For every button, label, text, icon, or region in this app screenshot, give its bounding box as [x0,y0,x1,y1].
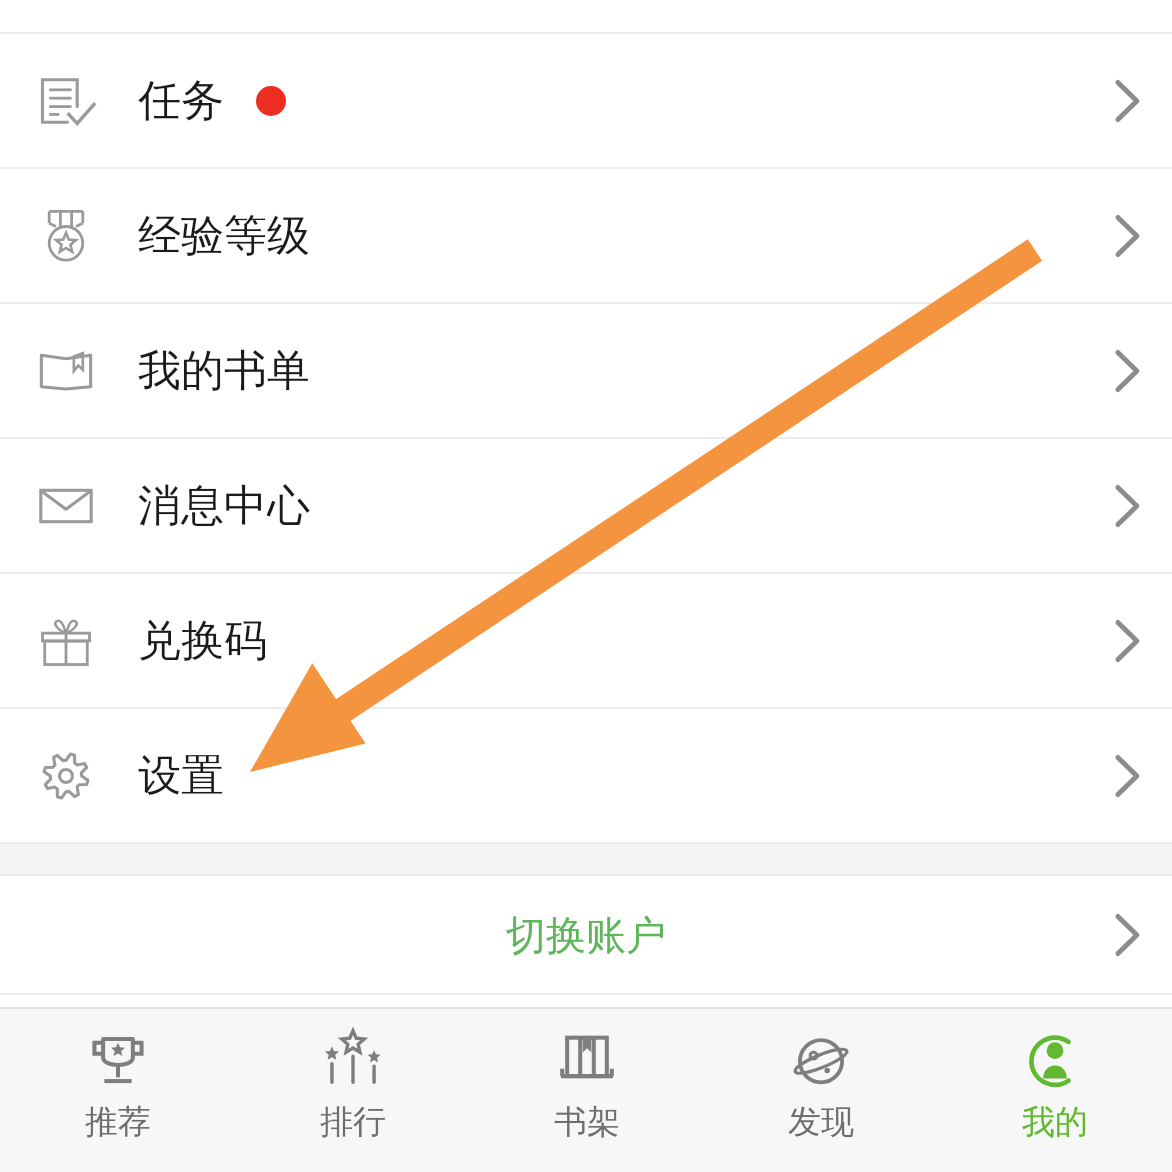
staticText: 排行 [320,1101,386,1143]
button[interactable]: 书架 [470,1007,704,1172]
staticText: 我的 [1022,1101,1088,1143]
staticText: 我的书单 [138,344,310,398]
staticText: 书架 [554,1101,620,1143]
button[interactable]: 经验等级 [0,169,1172,302]
button[interactable]: 发现 [704,1007,938,1172]
staticText: 经验等级 [138,209,310,263]
button[interactable]: 任务 [0,34,1172,167]
button[interactable]: 推荐 [0,1007,235,1172]
button[interactable]: 兑换码 [0,574,1172,707]
staticText: 消息中心 [138,479,310,533]
button[interactable]: 排行 [235,1007,470,1172]
button[interactable]: 我的 [938,1007,1172,1172]
staticText: 设置 [138,749,224,803]
button[interactable]: 切换账户 [0,876,1172,993]
staticText: 兑换码 [138,614,267,668]
button[interactable]: 消息中心 [0,439,1172,572]
button[interactable]: 设置 [0,709,1172,842]
staticText: 任务 [138,74,224,128]
staticText: 切换账户 [506,910,666,960]
button[interactable]: 我的书单 [0,304,1172,437]
staticText: 发现 [788,1101,854,1143]
staticText: 推荐 [85,1101,151,1143]
